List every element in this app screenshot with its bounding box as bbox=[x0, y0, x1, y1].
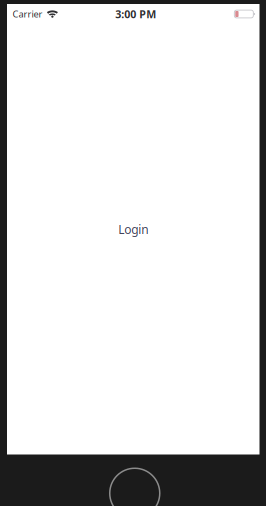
button[interactable]: Home bbox=[110, 468, 160, 506]
staticText: 3:00 PM bbox=[115, 7, 156, 21]
staticText: Login bbox=[118, 221, 148, 237]
staticText: Carrier bbox=[12, 8, 42, 20]
